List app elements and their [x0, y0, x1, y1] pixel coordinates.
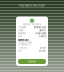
staticText: $128.50 — [34, 26, 46, 29]
staticText: Merchant — [18, 39, 29, 42]
staticText: Amount — [18, 26, 26, 29]
staticText: $120 — [40, 46, 46, 49]
staticText: A91X2 — [39, 35, 46, 38]
staticText: Ref — [18, 35, 22, 38]
staticText: Subtotal — [18, 46, 27, 49]
staticText: Date — [18, 29, 23, 32]
button[interactable]: Done — [18, 59, 46, 64]
staticText: Method — [18, 32, 25, 35]
staticText: 12 Market St — [18, 43, 31, 46]
staticText: Payment successful — [22, 23, 41, 26]
staticText: Payment Receipt — [19, 4, 45, 7]
staticText: Done — [28, 60, 35, 63]
staticText: Visa 4821 — [35, 32, 46, 35]
staticText: $8.50 — [39, 49, 46, 52]
staticText: Tax — [18, 49, 21, 52]
staticText: Green Grocer — [18, 41, 32, 44]
staticText: Jun 14 — [39, 29, 46, 32]
